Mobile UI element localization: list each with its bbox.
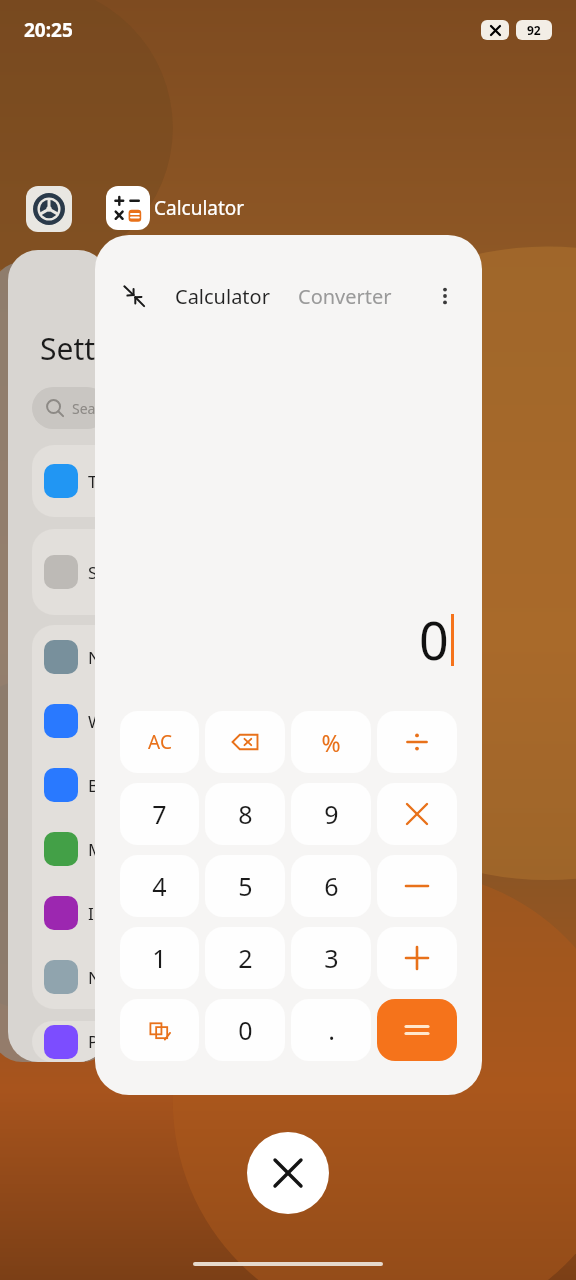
staticText: N [88, 966, 101, 989]
staticText: Sett [40, 328, 96, 369]
staticText: M [88, 838, 104, 861]
button[interactable]: Minus [377, 855, 457, 917]
button[interactable]: 5 [205, 855, 285, 917]
button[interactable]: 8 [205, 783, 285, 845]
button[interactable]: 0 [205, 999, 285, 1061]
staticText: P [88, 1030, 99, 1053]
staticText: 5 [238, 869, 253, 903]
button[interactable]: AC [120, 711, 199, 773]
staticText: 20:25 [24, 17, 73, 43]
button[interactable]: More options [426, 277, 464, 315]
staticText: 2 [238, 941, 253, 975]
staticText: 0 [238, 1013, 253, 1047]
staticText: N [88, 646, 101, 669]
staticText: Converter [298, 283, 392, 310]
staticText: 8 [238, 797, 253, 831]
button[interactable]: 3 [291, 927, 371, 989]
staticText: 7 [152, 797, 167, 831]
button[interactable]: Converter [296, 283, 394, 310]
button[interactable]: Calculator [173, 283, 272, 310]
staticText: % [321, 727, 341, 758]
button[interactable]: 9 [291, 783, 371, 845]
staticText: 9 [324, 797, 339, 831]
staticText: 6 [324, 869, 339, 903]
staticText: Sea [72, 399, 96, 418]
staticText: W [88, 710, 104, 733]
button[interactable]: Divide [377, 711, 457, 773]
staticText: . [328, 1013, 335, 1047]
button[interactable]: % [291, 711, 371, 773]
button[interactable]: Plus [377, 927, 457, 989]
button[interactable]: . [291, 999, 371, 1061]
button[interactable]: 7 [120, 783, 199, 845]
staticText: 0 [419, 604, 449, 675]
staticText: 92 [527, 22, 541, 38]
button[interactable]: Multiply [377, 783, 457, 845]
staticText: Calculator [154, 195, 245, 221]
staticText: S [88, 561, 98, 584]
staticText: 1 [152, 941, 167, 975]
staticText: Calculator [175, 283, 270, 310]
staticText: AC [148, 729, 172, 755]
button[interactable]: Close all [247, 1132, 329, 1214]
button[interactable]: 6 [291, 855, 371, 917]
button[interactable]: 2 [205, 927, 285, 989]
button[interactable]: History [120, 999, 199, 1061]
button[interactable]: 4 [120, 855, 199, 917]
staticText: 4 [152, 869, 167, 903]
staticText: 3 [324, 941, 339, 975]
staticText: B [88, 774, 100, 797]
button[interactable]: Backspace [205, 711, 285, 773]
staticText: T [88, 470, 98, 493]
button[interactable]: Equals [377, 999, 457, 1061]
button[interactable]: Exit freeform [113, 275, 155, 317]
staticText: I [88, 902, 94, 925]
button[interactable]: 1 [120, 927, 199, 989]
